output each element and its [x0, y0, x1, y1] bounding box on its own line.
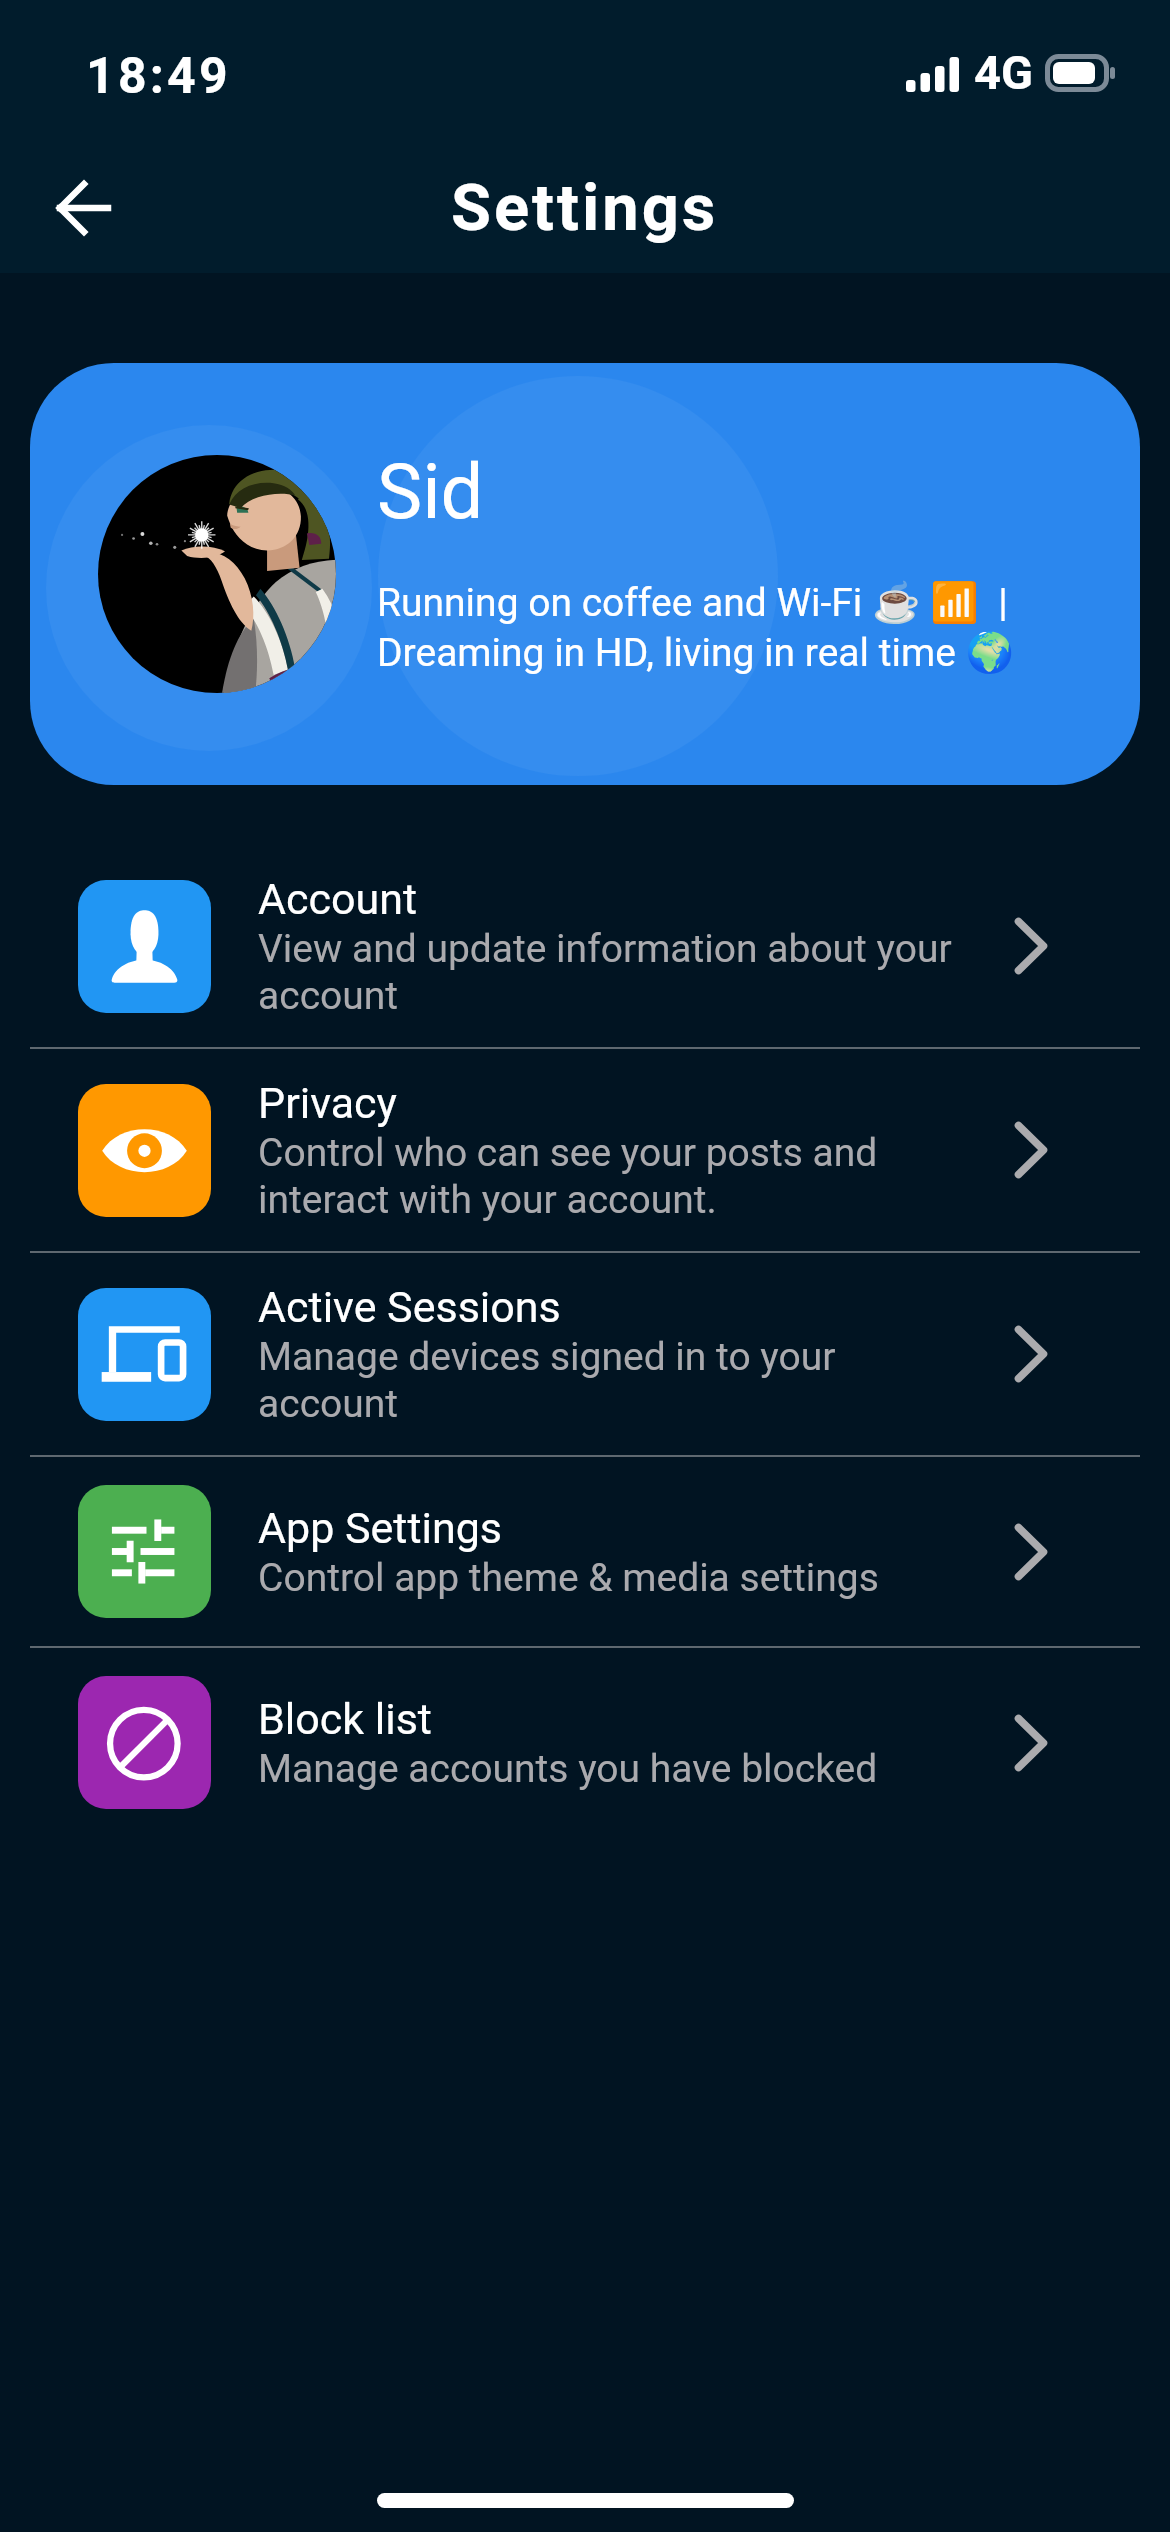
other: Open [1000, 1712, 1062, 1774]
button[interactable]: Account [0, 845, 1170, 1047]
button[interactable]: Block list [0, 1648, 1170, 1837]
staticText: Manage accounts you have blocked [258, 1745, 878, 1792]
staticText: Settings [451, 170, 719, 246]
other: Open [1000, 1119, 1062, 1181]
button[interactable]: Sid [30, 363, 1140, 785]
button[interactable]: App Settings [0, 1457, 1170, 1646]
staticText: App Settings [258, 1502, 503, 1554]
staticText: Control who can see your posts and inter… [258, 1129, 958, 1223]
staticText: Account [258, 873, 418, 925]
button[interactable]: Active Sessions [0, 1253, 1170, 1455]
staticText: View and update information about your a… [258, 925, 958, 1019]
staticText: Sid [377, 447, 484, 536]
staticText: Block list [258, 1693, 432, 1745]
other: Open [1000, 1323, 1062, 1385]
staticText: Active Sessions [258, 1281, 561, 1333]
staticText: Running on coffee and Wi-Fi ☕ 📶 | Dreami… [377, 576, 1015, 676]
other: Open [1000, 1521, 1062, 1583]
button[interactable]: Back [36, 160, 132, 256]
other: Open [1000, 915, 1062, 977]
button[interactable]: Privacy [0, 1049, 1170, 1251]
staticText: Control app theme & media settings [258, 1554, 879, 1601]
staticText: 4G [974, 45, 1033, 100]
staticText: Privacy [258, 1077, 397, 1129]
staticText: 18:49 [86, 47, 231, 106]
staticText: Manage devices signed in to your account [258, 1333, 958, 1427]
